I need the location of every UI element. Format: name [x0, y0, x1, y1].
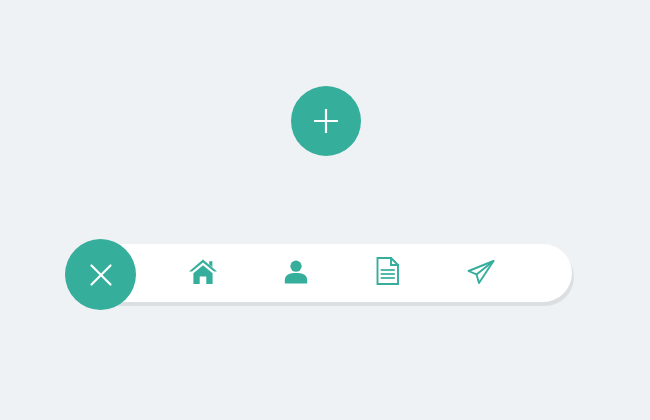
button[interactable]: Documents: [373, 256, 403, 286]
button[interactable]: Send: [466, 257, 496, 287]
button[interactable]: Profile: [281, 257, 311, 287]
button[interactable]: Close: [65, 239, 136, 310]
button[interactable]: Home: [188, 257, 218, 287]
button[interactable]: Add: [291, 86, 361, 156]
